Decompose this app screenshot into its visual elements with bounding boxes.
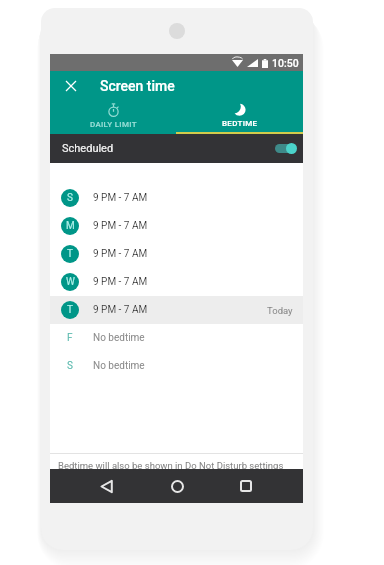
button[interactable]: DAILY LIMIT (50, 100, 176, 134)
staticText: T (67, 248, 73, 260)
staticText: 10:50 (272, 57, 299, 69)
button[interactable]: T (50, 240, 303, 268)
button[interactable]: S (50, 352, 303, 380)
staticText: S (67, 192, 73, 204)
button[interactable]: M (50, 212, 303, 240)
button[interactable]: S (50, 184, 303, 212)
staticText: Screen time (100, 78, 175, 94)
staticText: Bedtime will also be shown in Do Not Dis… (58, 460, 284, 471)
button[interactable]: T (50, 296, 303, 324)
staticText: Today (267, 305, 293, 316)
button[interactable]: Scheduled (50, 134, 303, 163)
staticText: DAILY LIMIT (90, 120, 137, 129)
staticText: 9 PM - 7 AM (93, 248, 148, 260)
staticText: S (67, 360, 73, 372)
staticText: M (66, 220, 75, 232)
staticText: No bedtime (93, 332, 145, 344)
staticText: Scheduled (62, 142, 114, 155)
staticText: 9 PM - 7 AM (93, 220, 148, 232)
staticText: 9 PM - 7 AM (93, 304, 148, 316)
staticText: 9 PM - 7 AM (93, 192, 148, 204)
staticText: W (66, 276, 75, 288)
staticText: 9 PM - 7 AM (93, 276, 148, 288)
button[interactable]: BEDTIME (176, 100, 303, 134)
staticText: F (67, 332, 73, 344)
button[interactable]: F (50, 324, 303, 352)
button[interactable]: Recents (233, 473, 259, 499)
button[interactable]: Back (94, 473, 120, 499)
staticText: BEDTIME (222, 119, 258, 128)
button[interactable]: Home (164, 473, 190, 499)
staticText: T (67, 304, 73, 316)
button[interactable]: Close (62, 77, 80, 95)
button[interactable]: W (50, 268, 303, 296)
staticText: No bedtime (93, 360, 145, 372)
